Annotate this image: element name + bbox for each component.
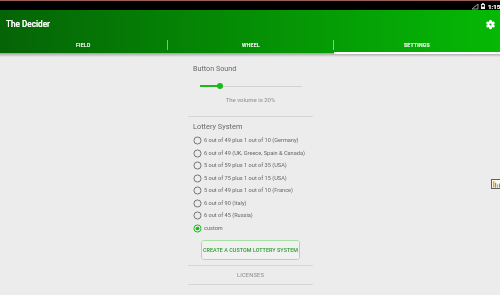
staticText: SETTINGS — [404, 42, 430, 48]
button[interactable]: Chart preview — [491, 179, 500, 189]
staticText: LICENSES — [237, 272, 265, 279]
staticText: Button Sound — [193, 64, 237, 72]
button[interactable]: 6 out of 49 (UK, Greece, Spain & Canada) — [193, 147, 305, 159]
staticText: WHEEL — [242, 42, 260, 48]
button[interactable] — [199, 79, 303, 93]
button[interactable]: LICENSES — [188, 266, 313, 284]
staticText: 6 out of 45 (Russia) — [204, 212, 253, 219]
button[interactable]: WHEEL — [168, 37, 333, 53]
button[interactable]: Settings — [483, 17, 497, 31]
staticText: 5 out of 59 plus 1 out of 35 (USA) — [204, 162, 287, 169]
staticText: 6 out of 90 (Italy) — [204, 200, 247, 207]
button[interactable]: 6 out of 90 (Italy) — [193, 197, 247, 209]
staticText: 6 out of 49 plus 1 out of 10 (Germany) — [204, 137, 299, 144]
button[interactable]: CREATE A CUSTOM LOTTERY SYSTEM — [201, 240, 300, 260]
button[interactable]: FIELD — [0, 37, 167, 53]
staticText: 5 out of 49 plus 1 out of 10 (France) — [204, 187, 293, 194]
staticText: CREATE A CUSTOM LOTTERY SYSTEM — [203, 247, 299, 253]
staticText: FIELD — [76, 42, 91, 48]
button[interactable]: 5 out of 49 plus 1 out of 10 (France) — [193, 184, 293, 196]
button[interactable]: SETTINGS — [334, 37, 500, 53]
staticText: Lottery System — [193, 122, 243, 131]
staticText: custom — [204, 225, 223, 232]
button[interactable]: 6 out of 49 plus 1 out of 10 (Germany) — [193, 134, 299, 146]
staticText: The volume is 20% — [188, 96, 313, 103]
button[interactable]: 6 out of 45 (Russia) — [193, 209, 253, 221]
staticText: 6 out of 49 (UK, Greece, Spain & Canada) — [204, 150, 305, 157]
staticText: 1:15 — [488, 3, 500, 10]
button[interactable]: 5 out of 75 plus 1 out of 15 (USA) — [193, 172, 287, 184]
staticText: 5 out of 75 plus 1 out of 15 (USA) — [204, 175, 287, 182]
staticText: The Decider — [6, 19, 50, 29]
button[interactable]: custom — [193, 222, 223, 234]
button[interactable]: 5 out of 59 plus 1 out of 35 (USA) — [193, 159, 287, 171]
